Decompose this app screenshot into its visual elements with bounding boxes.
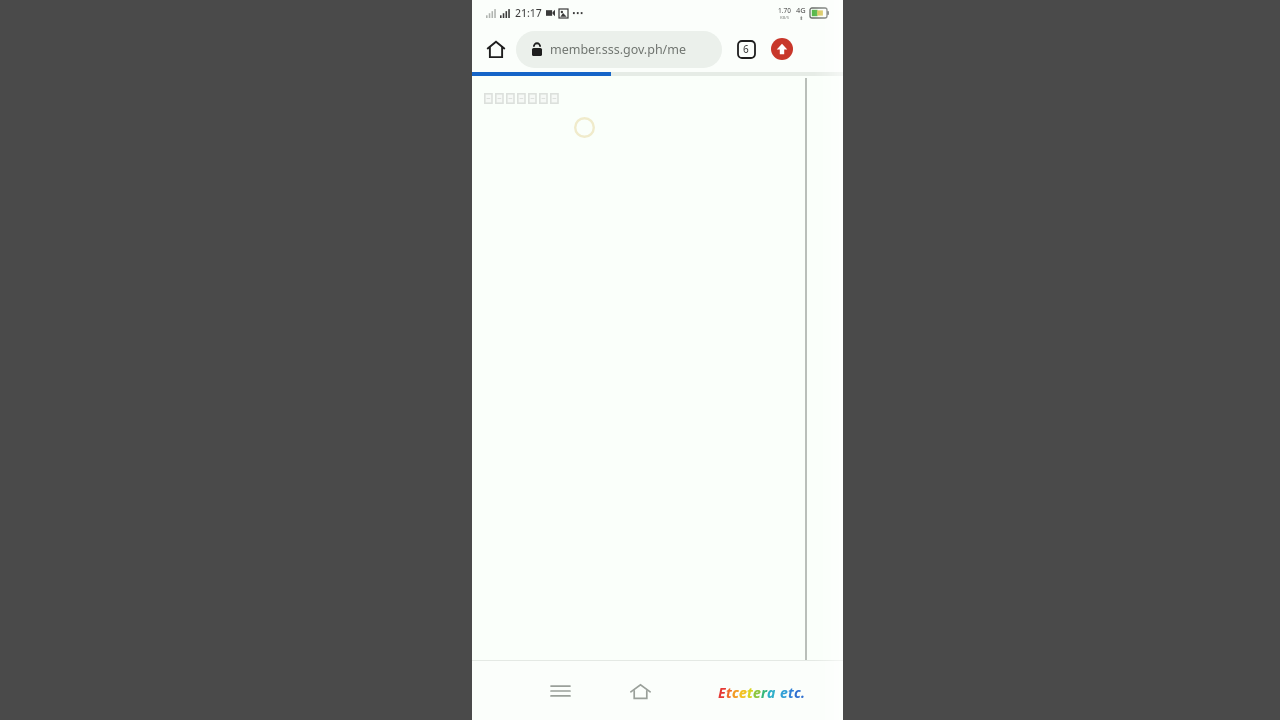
staticText: e [753, 683, 761, 702]
staticText: c [794, 683, 801, 702]
staticText: member.sss.gov.ph/me [550, 41, 686, 58]
staticText: t [788, 683, 794, 702]
button[interactable]: member.sss.gov.ph/me [516, 31, 722, 68]
staticText: E [718, 683, 726, 702]
button[interactable]: Home [620, 671, 660, 711]
staticText: e [739, 683, 747, 702]
staticText: 1.70 [778, 6, 791, 15]
staticText: KB/S [780, 15, 790, 21]
staticText: ⬍ [799, 15, 804, 21]
staticText: ⋯ [572, 7, 583, 20]
staticText: t [747, 683, 753, 702]
staticText: e [780, 683, 788, 702]
staticText: . [801, 683, 806, 702]
button[interactable]: Tabs, 6 open [731, 34, 761, 64]
staticText: a [767, 683, 776, 702]
button[interactable]: Home [478, 31, 514, 67]
staticText: 6 [743, 42, 749, 56]
staticText: 21:17 [515, 6, 542, 20]
staticText: t [726, 683, 732, 702]
staticText: c [732, 683, 739, 702]
staticText: 4G [796, 5, 806, 15]
button[interactable]: Menu [540, 671, 580, 711]
button[interactable]: Upload [766, 33, 798, 65]
staticText: r [761, 683, 767, 702]
